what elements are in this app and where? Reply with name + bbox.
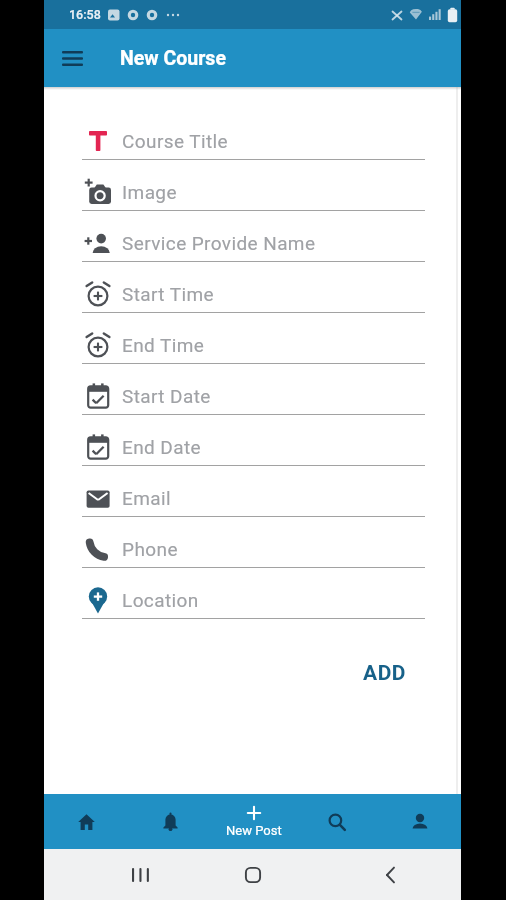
staticText: End Time <box>122 334 205 356</box>
staticText: Start Date <box>122 385 211 407</box>
button[interactable]: Start Time <box>44 262 461 313</box>
staticText: Service Provide Name <box>122 232 316 254</box>
staticText: Start Time <box>122 283 214 305</box>
button[interactable]: New Post <box>212 794 295 849</box>
button[interactable]: Start Date <box>44 364 461 415</box>
button[interactable]: End Date <box>44 415 461 466</box>
button[interactable] <box>295 794 378 849</box>
button[interactable]: Course Title <box>44 109 461 160</box>
staticText: 16:58 <box>69 7 101 22</box>
button[interactable]: Location <box>44 568 461 619</box>
button[interactable] <box>44 794 128 849</box>
button[interactable] <box>378 794 461 849</box>
button[interactable]: Phone <box>44 517 461 568</box>
button[interactable]: ADD <box>355 657 414 690</box>
staticText: New Post <box>226 823 282 838</box>
button[interactable]: Service Provide Name <box>44 211 461 262</box>
staticText: End Date <box>122 436 202 458</box>
button[interactable] <box>44 30 100 86</box>
staticText: Location <box>122 589 199 611</box>
button[interactable] <box>128 794 212 849</box>
button[interactable]: End Time <box>44 313 461 364</box>
button[interactable] <box>120 855 160 895</box>
staticText: Image <box>122 181 177 203</box>
staticText: ADD <box>363 661 406 686</box>
button[interactable] <box>233 855 273 895</box>
button[interactable]: Image <box>44 160 461 211</box>
button[interactable]: Email <box>44 466 461 517</box>
staticText: Email <box>122 487 172 509</box>
staticText: Phone <box>122 538 178 560</box>
button[interactable] <box>370 855 410 895</box>
staticText: Course Title <box>122 130 229 152</box>
staticText: New Course <box>120 47 226 70</box>
